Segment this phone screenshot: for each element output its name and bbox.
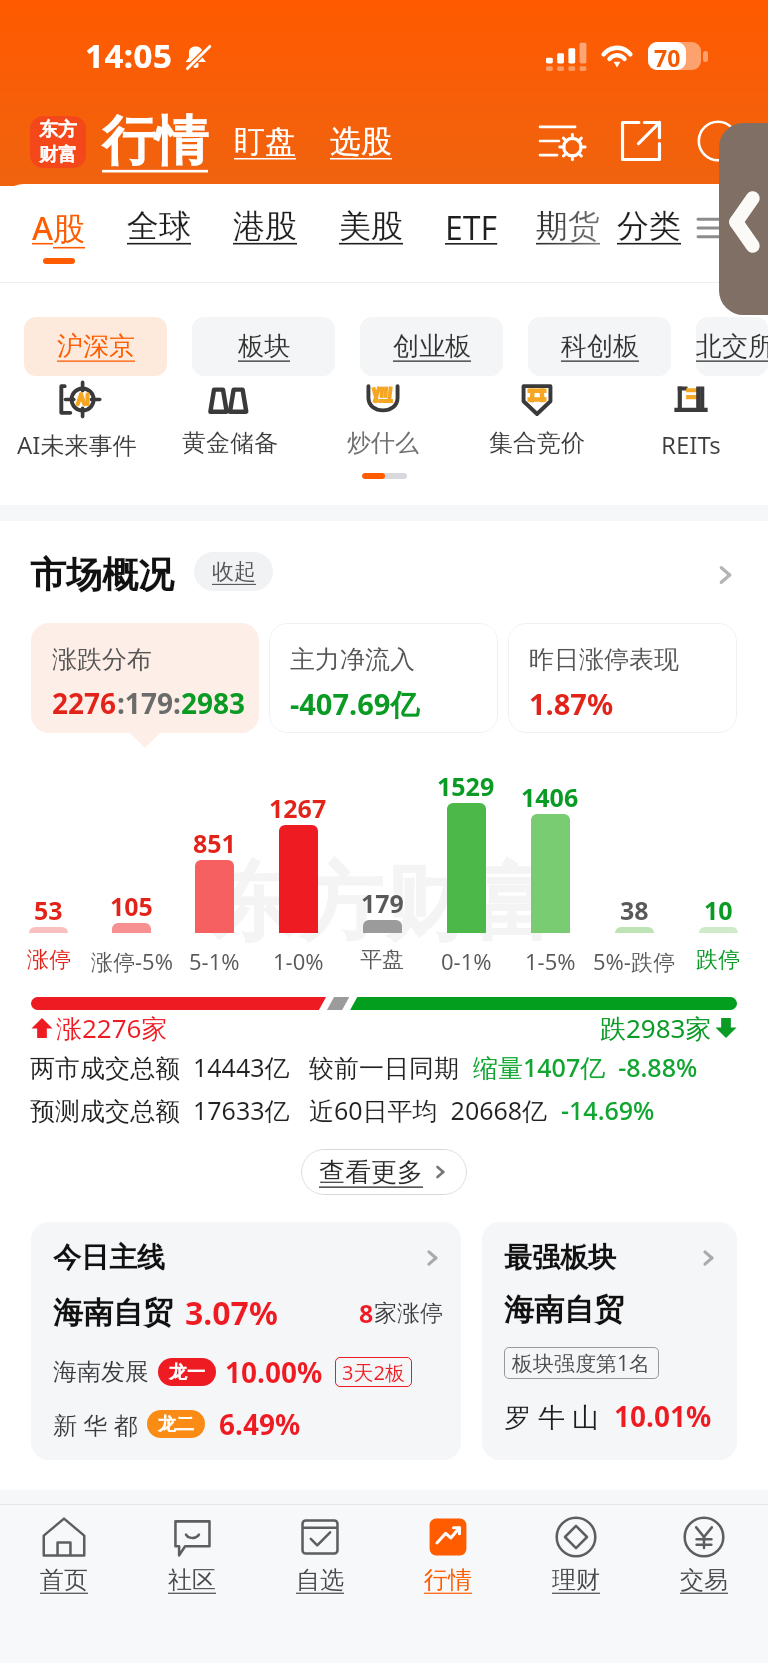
button[interactable]: Search (692, 115, 744, 167)
staticText: 港股 (233, 206, 297, 246)
staticText: 创业板 (393, 330, 471, 363)
staticText: 最强板块 (504, 1240, 616, 1275)
staticText: 东方财富 (210, 851, 558, 957)
staticText: 黄金储备 (182, 428, 278, 458)
button[interactable]: REITs (614, 385, 768, 461)
button[interactable]: 分类 (617, 206, 681, 246)
button[interactable]: 最强板块 (482, 1222, 737, 1460)
staticText: 财富 (39, 143, 77, 167)
staticText: 北交所 (696, 330, 768, 363)
staticText: 龙一 (169, 1361, 205, 1384)
button[interactable]: 炒什么 (306, 385, 460, 458)
staticText: 美股 (339, 206, 403, 246)
button[interactable]: 沪深京 (24, 317, 167, 376)
staticText: 家涨停 (374, 1299, 443, 1328)
staticText: 板块 (238, 330, 290, 363)
button[interactable]: 交易 (640, 1505, 768, 1663)
button[interactable]: 集合竞价 (460, 385, 614, 458)
staticText: 跌停 (696, 946, 740, 974)
staticText: 沪深京 (57, 330, 135, 363)
staticText: 5-1% (189, 946, 240, 976)
button[interactable]: 科创板 (528, 317, 671, 376)
staticText: 179 (361, 886, 404, 920)
staticText: 理财 (552, 1565, 600, 1595)
staticText: 龙二 (158, 1413, 194, 1436)
button[interactable]: Settings list (536, 115, 588, 167)
button[interactable]: 选股 (330, 122, 392, 161)
staticText: 主力净流入 (290, 644, 415, 675)
button[interactable]: 期货 (536, 184, 600, 254)
staticText: 1529 (437, 769, 495, 803)
button[interactable]: 主力净流入 (269, 623, 498, 733)
button[interactable]: 全球 (127, 184, 191, 254)
staticText: 自选 (296, 1565, 344, 1595)
staticText: 70 (654, 42, 681, 70)
staticText: 851 (193, 826, 236, 860)
button[interactable]: AI未来事件 (0, 385, 153, 461)
staticText: 行情 (102, 108, 208, 175)
button[interactable]: 黄金储备 (153, 385, 306, 458)
button[interactable]: 北交所 (696, 317, 768, 376)
button[interactable]: 港股 (233, 184, 297, 254)
staticText: 市场概况 (30, 552, 174, 597)
staticText: 涨停-5% (91, 946, 173, 976)
staticText: 3.07% (185, 1291, 278, 1335)
staticText: 集合竞价 (489, 428, 585, 458)
staticText: 科创板 (561, 330, 639, 363)
button[interactable]: 美股 (339, 184, 403, 254)
button[interactable]: 涨跌分布 (31, 623, 259, 733)
staticText: 炒什么 (347, 428, 419, 458)
staticText: A股 (32, 206, 85, 250)
staticText: -14.69% (561, 1093, 655, 1127)
staticText: 14:05 (85, 33, 173, 78)
staticText: AI未来事件 (17, 428, 137, 461)
staticText: 0-1% (441, 946, 492, 976)
staticText: 跌2983家 (600, 1010, 712, 1046)
staticText: 10.00% (225, 1353, 323, 1391)
staticText: 首页 (40, 1565, 88, 1595)
button[interactable]: Share (615, 115, 667, 167)
staticText: 1-0% (273, 946, 324, 976)
staticText: 海南自贸 (504, 1291, 624, 1329)
staticText: 2983 (181, 684, 246, 722)
button[interactable]: 社区 (128, 1505, 256, 1663)
button[interactable]: 查看更多 (301, 1149, 467, 1195)
staticText: 查看更多 (319, 1156, 423, 1189)
staticText: 缩量1407亿 -8.88% (473, 1050, 698, 1084)
button[interactable]: 昨日涨停表现 (508, 623, 737, 733)
staticText: 1.87% (529, 684, 614, 723)
button[interactable]: 理财 (512, 1505, 640, 1663)
staticText: 6.49% (219, 1405, 301, 1443)
button[interactable]: 今日主线 (31, 1222, 461, 1460)
staticText: 2276 (52, 684, 117, 722)
staticText: 收起 (212, 558, 256, 586)
staticText: 新 华 都 (53, 1408, 138, 1441)
staticText: 涨停 (27, 946, 71, 974)
staticText: 105 (110, 889, 153, 923)
button[interactable]: Open side panel (719, 123, 768, 315)
staticText: 行情 (424, 1565, 472, 1595)
button[interactable]: 行情 (384, 1505, 512, 1663)
button[interactable]: 盯盘 (234, 122, 296, 161)
button[interactable]: ETF (445, 184, 498, 258)
staticText: 10 (704, 893, 733, 927)
button[interactable]: 板块 (192, 317, 335, 376)
staticText: 交易 (680, 1565, 728, 1595)
staticText: ETF (445, 206, 498, 250)
button[interactable]: 市场概况 (30, 552, 738, 597)
staticText: 今日主线 (53, 1240, 165, 1275)
staticText: 10.01% (614, 1397, 712, 1435)
staticText: 38 (620, 893, 649, 927)
staticText: 1406 (521, 780, 579, 814)
staticText: 海南自贸 (53, 1294, 173, 1332)
button[interactable]: A股 (32, 184, 85, 264)
staticText: 1267 (269, 791, 327, 825)
staticText: 板块强度第1名 (512, 1349, 651, 1378)
staticText: 海南发展 (53, 1357, 149, 1387)
button[interactable]: All categories (697, 216, 729, 240)
staticText: 5%-跌停 (593, 946, 675, 976)
button[interactable]: 收起 (194, 552, 273, 591)
button[interactable]: 首页 (0, 1505, 128, 1663)
button[interactable]: 创业板 (360, 317, 503, 376)
button[interactable]: 自选 (256, 1505, 384, 1663)
